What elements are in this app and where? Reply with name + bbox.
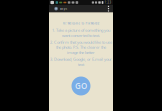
staticText: Steps (60, 7, 67, 10)
staticText: GO (75, 81, 87, 91)
staticText: 2. Confirm that you would like to use (50, 39, 112, 45)
staticText: 1. Take a picture of something you (52, 27, 110, 33)
staticText: 3. Download, Google, or E-mail your (50, 56, 112, 62)
staticText: image the better (67, 50, 95, 55)
staticText: Hi! Welcome to PikWords! (62, 22, 99, 25)
staticText: text (78, 62, 84, 67)
staticText: 1:23 (105, 1, 112, 4)
staticText: want converted to text. (62, 33, 100, 38)
button[interactable]: More options (106, 5, 111, 12)
staticText: the photo. P.S. The clearer the (56, 45, 106, 50)
button[interactable]: GO (71, 76, 90, 95)
